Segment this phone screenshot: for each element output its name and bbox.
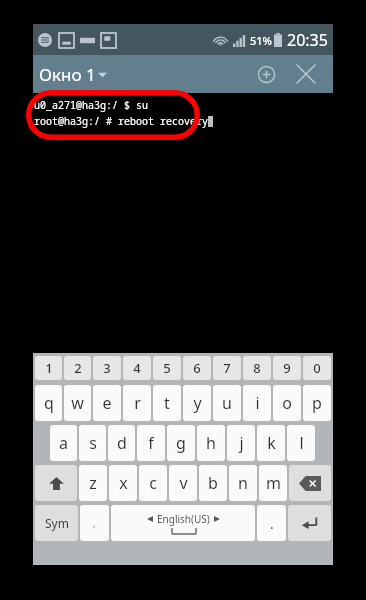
staticText: k — [267, 432, 276, 454]
button[interactable]: d — [108, 425, 135, 461]
staticText: c — [149, 472, 157, 494]
button[interactable]: Sym — [35, 505, 78, 541]
staticText: 5 — [163, 359, 171, 377]
button[interactable]: a — [50, 425, 77, 461]
staticText: Sym — [45, 515, 69, 531]
button[interactable]: Окно 1 — [39, 63, 107, 86]
staticText: y — [193, 392, 202, 414]
staticText: n — [238, 472, 248, 494]
button[interactable]: h — [197, 425, 225, 461]
staticText: j — [239, 432, 244, 454]
staticText: 9 — [283, 359, 291, 377]
button[interactable]: 9 — [273, 356, 301, 380]
button[interactable]: 2 — [64, 356, 91, 380]
staticText: p — [312, 392, 322, 414]
staticText: e — [102, 392, 112, 414]
button[interactable]: 5 — [153, 356, 181, 380]
button[interactable]: p — [303, 385, 331, 421]
staticText: t — [164, 392, 170, 414]
staticText: g — [176, 432, 186, 454]
button[interactable]: Enter — [288, 505, 331, 541]
staticText: s — [89, 432, 97, 454]
button[interactable]: z — [79, 465, 107, 501]
button[interactable]: o — [273, 385, 301, 421]
staticText: 7 — [223, 359, 231, 377]
staticText: root@ha3g:/ # reboot recovery — [34, 114, 208, 128]
staticText: w — [71, 392, 84, 414]
button[interactable]: l — [287, 425, 315, 461]
staticText: English(US) — [157, 512, 210, 526]
staticText: l — [299, 432, 304, 454]
staticText: Окно 1 — [39, 63, 96, 86]
staticText: . — [270, 514, 274, 533]
staticText: 20:35 — [287, 29, 328, 51]
button[interactable]: 8 — [243, 356, 271, 380]
staticText: u0_a271@ha3g:/ $ su — [34, 98, 148, 112]
button[interactable]: c — [139, 465, 167, 501]
staticText: 1 — [45, 359, 53, 377]
button[interactable]: Voice input — [80, 505, 109, 541]
button[interactable]: New window — [249, 57, 283, 91]
staticText: x — [119, 472, 128, 494]
button[interactable]: 0 — [303, 356, 331, 380]
button[interactable]: Close window — [289, 57, 323, 91]
button[interactable]: n — [229, 465, 257, 501]
button[interactable]: 4 — [123, 356, 151, 380]
button[interactable]: i — [243, 385, 271, 421]
button[interactable]: Period — [257, 505, 286, 541]
button[interactable]: w — [64, 385, 91, 421]
button[interactable]: r — [123, 385, 151, 421]
staticText: b — [208, 472, 218, 494]
button[interactable]: 1 — [35, 356, 62, 380]
button[interactable]: Backspace — [289, 465, 331, 501]
button[interactable]: Shift — [35, 465, 77, 501]
button[interactable]: k — [257, 425, 285, 461]
button[interactable]: y — [183, 385, 211, 421]
staticText: f — [148, 432, 154, 454]
staticText: a — [59, 432, 68, 454]
button[interactable]: 7 — [213, 356, 241, 380]
button[interactable]: f — [137, 425, 165, 461]
button[interactable]: v — [169, 465, 197, 501]
staticText: u — [222, 392, 232, 414]
staticText: d — [117, 432, 127, 454]
button[interactable]: b — [199, 465, 227, 501]
staticText: 2 — [74, 359, 82, 377]
staticText: 8 — [253, 359, 261, 377]
button[interactable]: e — [93, 385, 121, 421]
staticText: 0 — [313, 359, 321, 377]
staticText: i — [255, 392, 260, 414]
staticText: z — [89, 472, 97, 494]
button[interactable]: t — [153, 385, 181, 421]
staticText: 51% — [250, 33, 272, 48]
staticText: h — [206, 432, 216, 454]
button[interactable]: q — [35, 385, 62, 421]
button[interactable]: m — [259, 465, 287, 501]
staticText: o — [282, 392, 292, 414]
staticText: r — [134, 392, 141, 414]
staticText: 4 — [133, 359, 141, 377]
button[interactable]: j — [227, 425, 255, 461]
staticText: 6 — [193, 359, 201, 377]
button[interactable]: English(US) — [111, 505, 255, 541]
staticText: v — [179, 472, 188, 494]
button[interactable]: x — [109, 465, 137, 501]
staticText: m — [266, 472, 281, 494]
button[interactable]: 3 — [93, 356, 121, 380]
button[interactable]: s — [79, 425, 106, 461]
button[interactable]: 6 — [183, 356, 211, 380]
staticText: 3 — [103, 359, 111, 377]
button[interactable]: g — [167, 425, 195, 461]
staticText: q — [44, 392, 54, 414]
button[interactable]: u — [213, 385, 241, 421]
staticText: , — [93, 517, 96, 529]
